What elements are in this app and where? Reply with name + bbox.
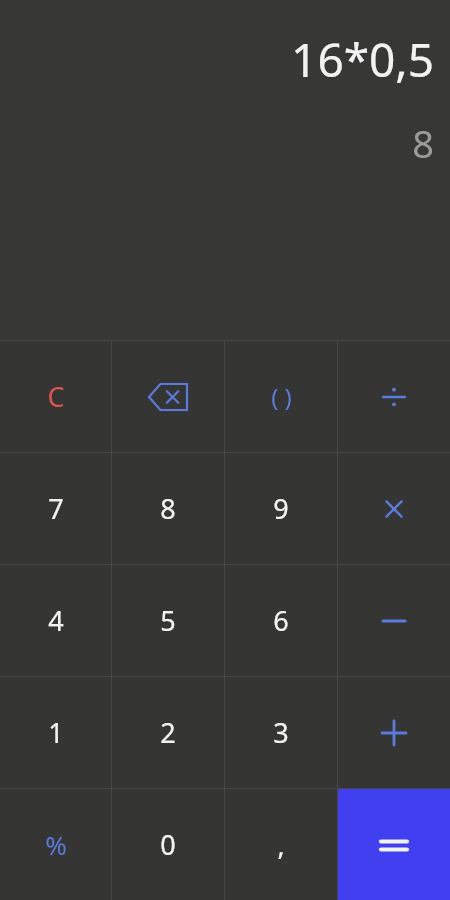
staticText: 2 [160,714,176,751]
button[interactable]: 1 [0,677,111,788]
button[interactable]: Backspace [112,341,224,452]
staticText: 6 [273,602,289,639]
button[interactable]: 7 [0,453,111,564]
staticText: 8 [160,490,176,527]
button[interactable]: 6 [225,565,337,676]
button[interactable]: C [0,341,111,452]
staticText: % [45,827,67,862]
staticText: , [277,826,285,863]
staticText: 7 [48,490,64,527]
staticText: 3 [273,714,289,751]
button[interactable]: 3 [225,677,337,788]
button[interactable]: 4 [0,565,111,676]
button[interactable]: , [225,789,337,900]
button[interactable]: ( ) [225,341,337,452]
staticText: 0 [160,826,176,863]
button[interactable]: Minus [338,565,450,676]
staticText: C [47,378,65,415]
button[interactable]: Divide [338,341,450,452]
staticText: ( ) [271,380,292,413]
button[interactable]: 8 [112,453,224,564]
staticText: 16*0,5 [291,28,434,91]
staticText: 5 [160,602,176,639]
button[interactable]: % [0,789,111,900]
button[interactable]: Multiply [338,453,450,564]
staticText: 8 [412,117,434,169]
staticText: 1 [48,714,64,751]
button[interactable]: 0 [112,789,224,900]
button[interactable]: 5 [112,565,224,676]
button[interactable]: 2 [112,677,224,788]
button[interactable]: 9 [225,453,337,564]
button[interactable]: Plus [338,677,450,788]
staticText: 9 [273,490,289,527]
button[interactable]: Equals [338,789,450,900]
staticText: 4 [48,602,64,639]
